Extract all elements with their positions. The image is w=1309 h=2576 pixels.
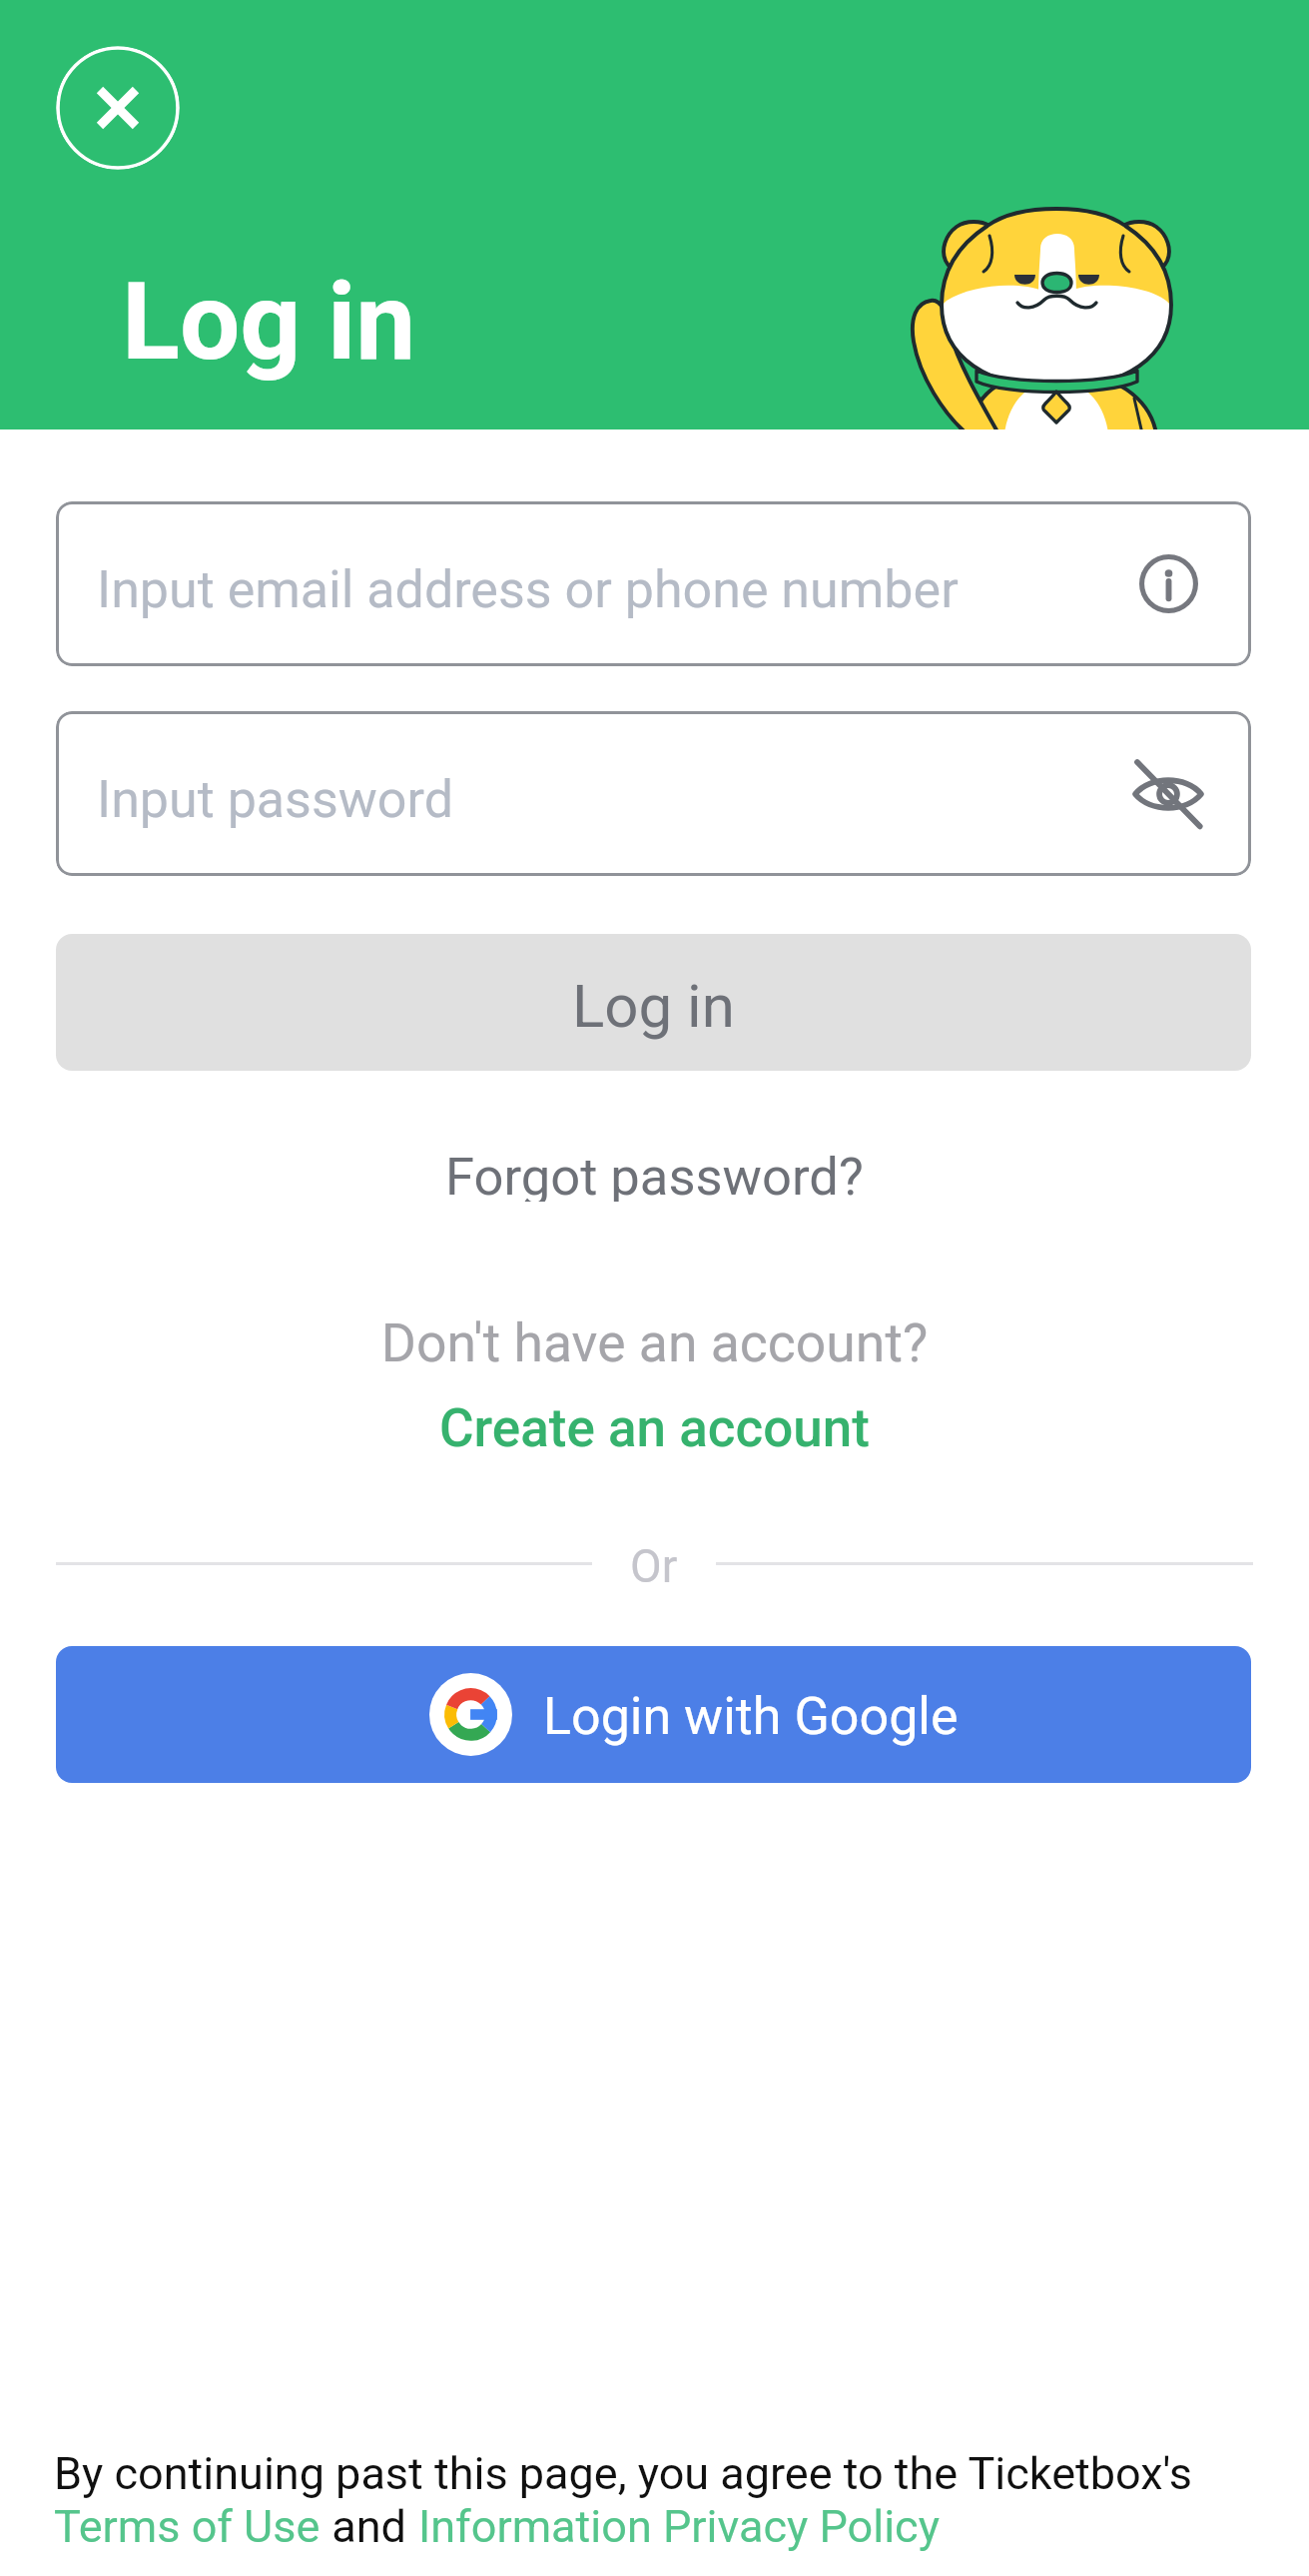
button[interactable]: Login with Google: [56, 1646, 1251, 1783]
staticText: and: [321, 2500, 418, 2553]
staticText: Log in: [572, 971, 735, 1041]
button[interactable]: Information: [1139, 554, 1198, 613]
staticText: By continuing past this page, you agree …: [54, 2447, 1192, 2500]
button[interactable]: Close: [56, 46, 180, 170]
staticText: Don't have an account?: [0, 1311, 1309, 1374]
button[interactable]: Terms of Use: [54, 2500, 321, 2553]
staticText: Information Privacy Policy: [418, 2500, 940, 2553]
button[interactable]: Information Privacy Policy: [418, 2500, 940, 2553]
staticText: Or: [630, 1539, 678, 1593]
button[interactable]: Show password: [1135, 761, 1201, 827]
button[interactable]: Create an account: [431, 1389, 878, 1461]
button[interactable]: Input email address or phone number: [56, 501, 1251, 666]
button[interactable]: Input password: [56, 711, 1251, 876]
staticText: Log in: [122, 260, 416, 385]
staticText: Input password: [97, 769, 453, 830]
staticText: Terms of Use: [54, 2500, 321, 2553]
staticText: Login with Google: [543, 1686, 959, 1747]
button[interactable]: Log in: [56, 934, 1251, 1071]
button[interactable]: Forgot password?: [437, 1138, 872, 1210]
staticText: Input email address or phone number: [97, 559, 959, 620]
staticText: Create an account: [439, 1397, 870, 1453]
staticText: Forgot password?: [445, 1146, 864, 1202]
